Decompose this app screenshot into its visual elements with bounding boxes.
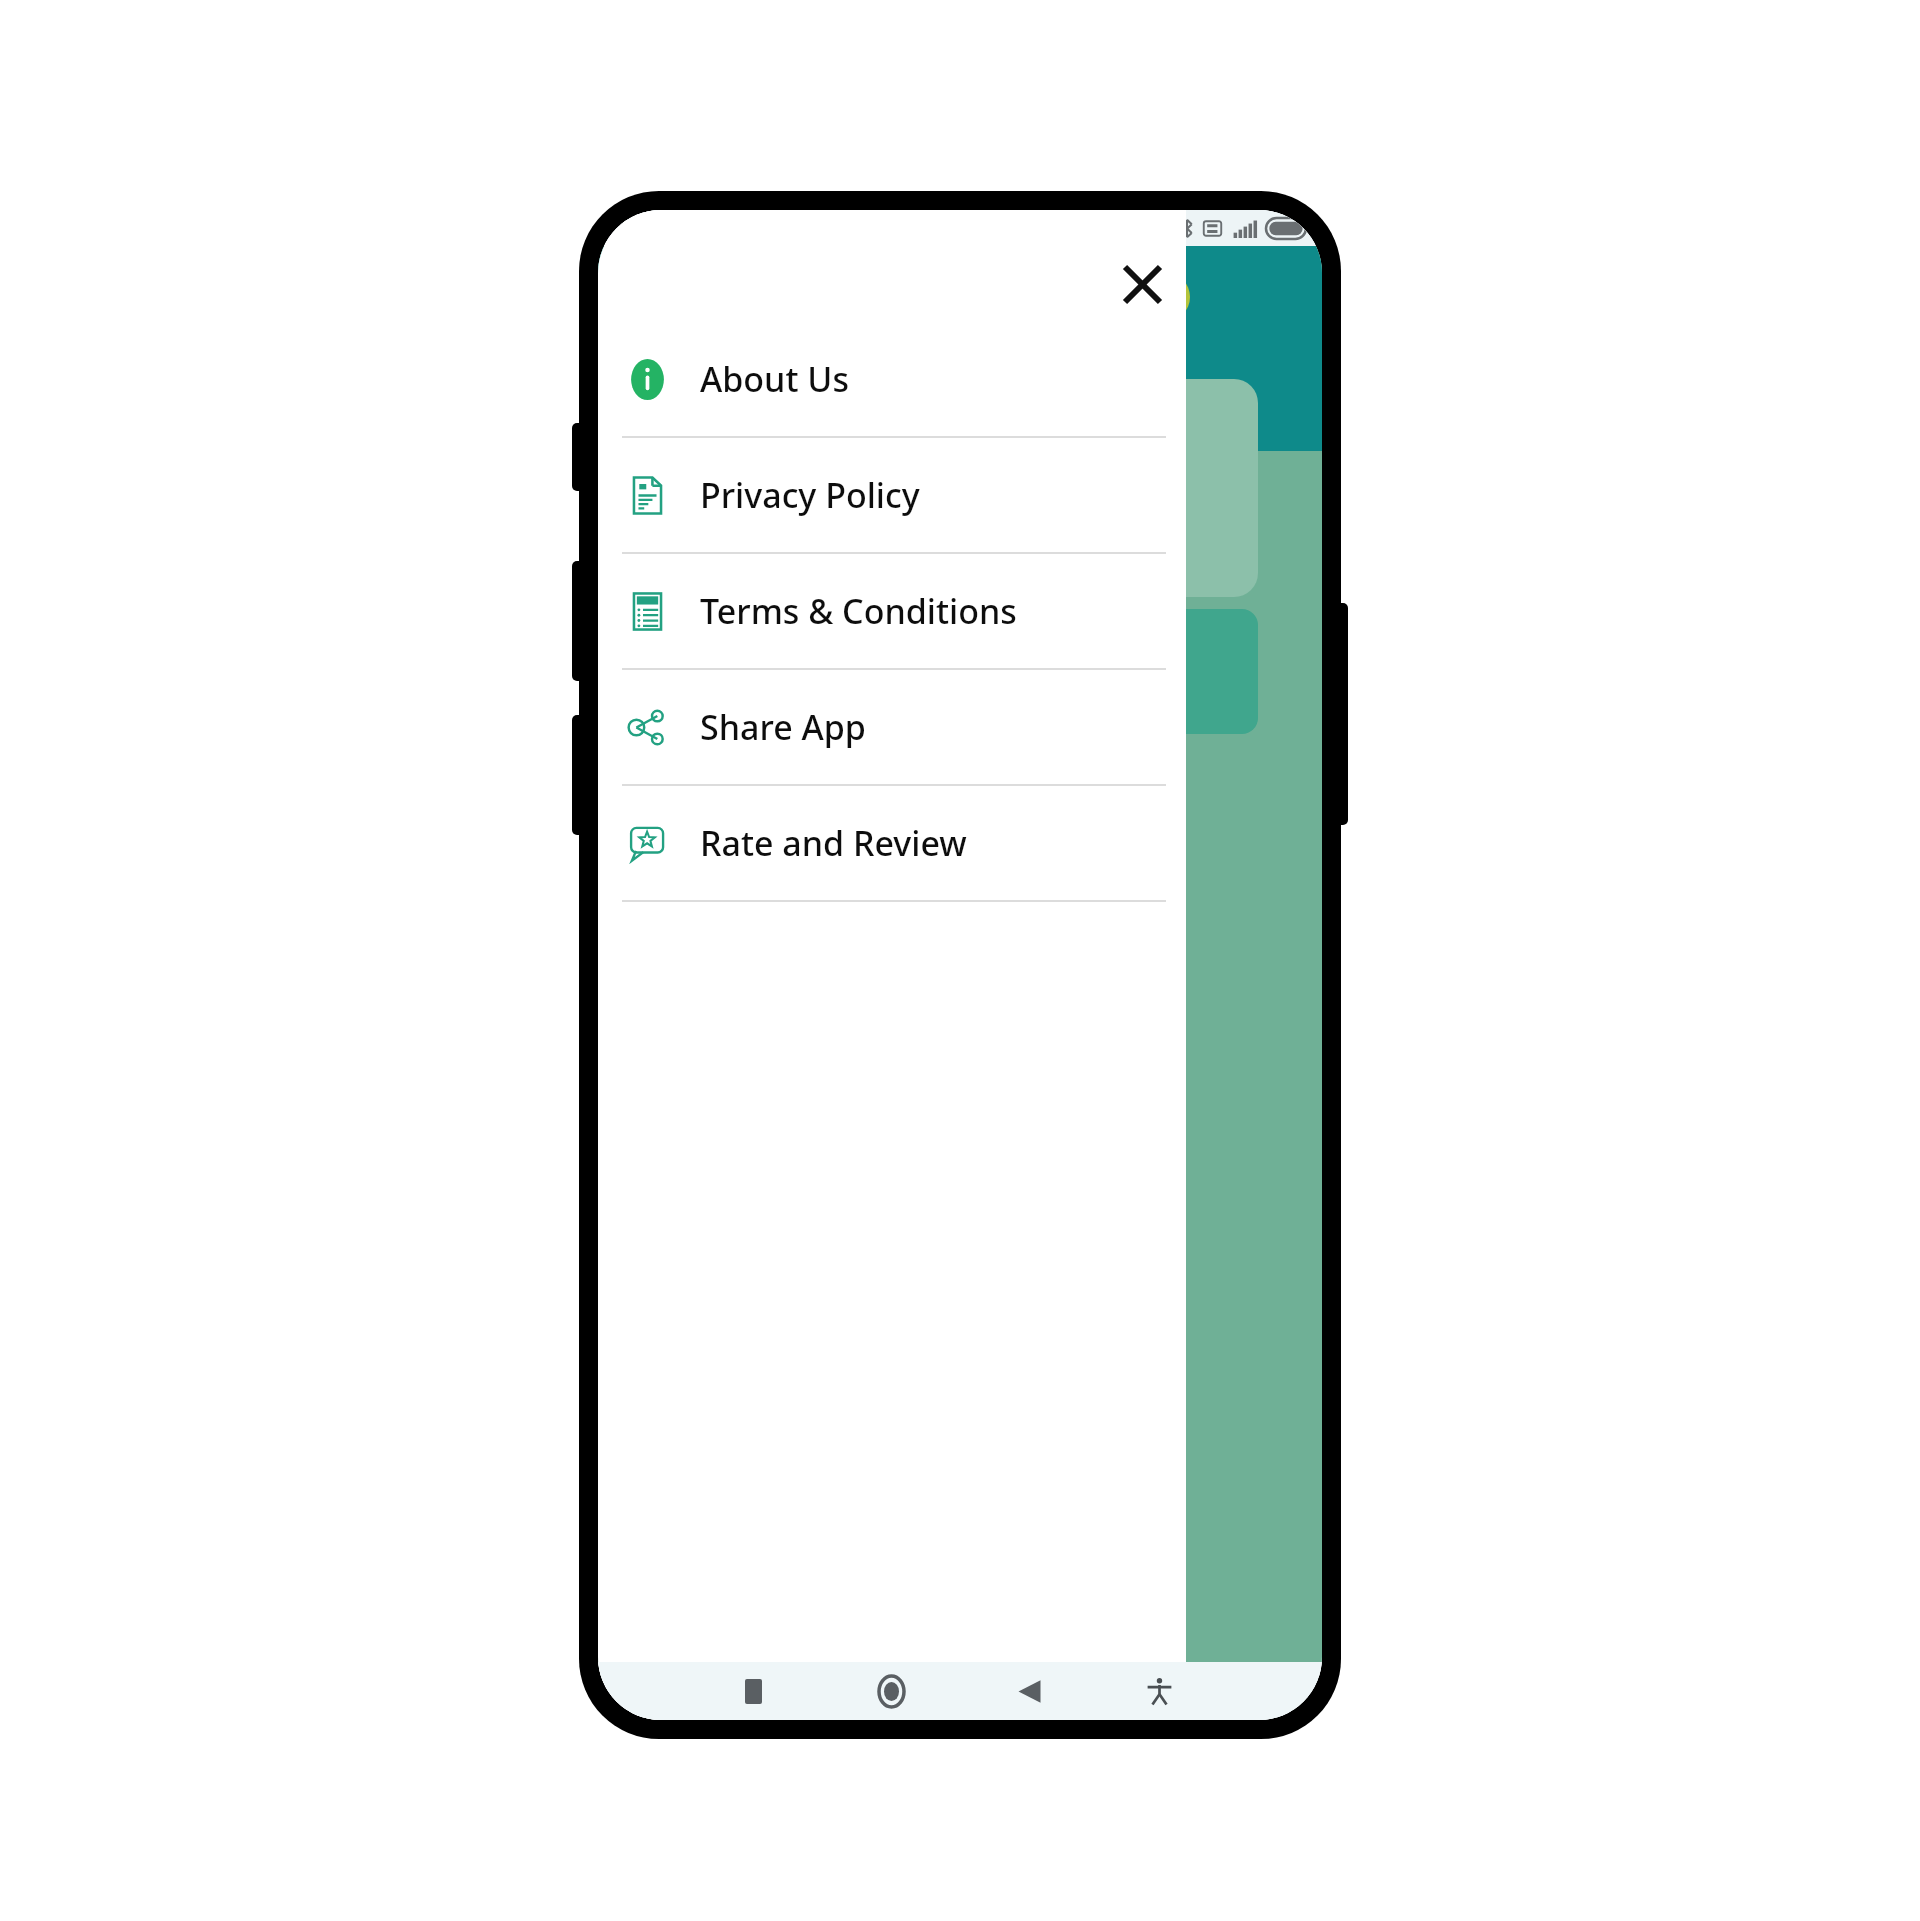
staticText: Privacy Policy bbox=[700, 472, 920, 518]
button[interactable]: e bbox=[654, 609, 1258, 734]
staticText: 328 bbox=[1056, 417, 1105, 455]
button[interactable]: Rate and Review bbox=[598, 786, 1186, 900]
button[interactable]: Terms & Conditions bbox=[598, 554, 1186, 668]
button[interactable]: Accessibility bbox=[1128, 1662, 1190, 1720]
staticText: Rate and Review bbox=[700, 820, 967, 866]
button[interactable]: Privacy Policy bbox=[598, 438, 1186, 552]
button[interactable]: Back bbox=[998, 1662, 1060, 1720]
button[interactable]: About Us bbox=[598, 322, 1186, 436]
button[interactable]: Close bbox=[1114, 256, 1170, 312]
button[interactable]: Recents bbox=[722, 1662, 784, 1720]
button[interactable]: Home bbox=[860, 1662, 922, 1720]
button[interactable]: Profile bbox=[1072, 901, 1176, 973]
staticText: About Us bbox=[700, 356, 849, 402]
staticText: 11:13 AM 0.0KB/ bbox=[618, 217, 754, 240]
staticText: ngs bbox=[1064, 527, 1113, 564]
button[interactable]: Notifications bbox=[1140, 272, 1190, 322]
staticText: Terms & Conditions bbox=[700, 588, 1017, 634]
staticText: Share App bbox=[700, 704, 866, 750]
staticText: e bbox=[1132, 669, 1146, 700]
button[interactable]: Share App bbox=[598, 670, 1186, 784]
